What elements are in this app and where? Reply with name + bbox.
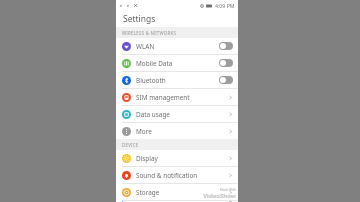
staticText: DEVICE <box>122 142 139 148</box>
staticText: More <box>136 127 152 136</box>
button[interactable]: More <box>116 123 238 139</box>
staticText: WLAN <box>136 42 155 51</box>
staticText: Settings <box>123 13 156 25</box>
other: Mobile Data toggle <box>219 59 233 67</box>
staticText: Mobile Data <box>136 59 173 68</box>
staticText: Data usage <box>136 110 170 119</box>
button[interactable]: Battery <box>116 201 238 202</box>
staticText: Storage <box>136 188 160 197</box>
button[interactable]: Display <box>116 150 238 167</box>
button[interactable]: WLAN <box>116 38 238 55</box>
other: Bluetooth toggle <box>219 76 233 84</box>
button[interactable]: Mobile Data <box>116 55 238 72</box>
button[interactable]: Storage <box>116 184 238 201</box>
staticText: Display <box>136 154 158 163</box>
staticText: VideoShow <box>203 192 236 200</box>
button[interactable]: Settings <box>116 11 238 27</box>
staticText: 4:09 PM <box>215 2 235 9</box>
staticText: Made With <box>219 188 236 192</box>
button[interactable]: Bluetooth <box>116 72 238 89</box>
staticText: SIM management <box>136 93 190 102</box>
staticText: Sound & notification <box>136 171 198 180</box>
staticText: WIRELESS & NETWORKS <box>122 30 177 36</box>
other: WLAN toggle <box>219 42 233 50</box>
staticText: Bluetooth <box>136 76 166 85</box>
button[interactable]: Sound & notification <box>116 167 238 184</box>
button[interactable]: Data usage <box>116 106 238 123</box>
button[interactable]: SIM management <box>116 89 238 106</box>
